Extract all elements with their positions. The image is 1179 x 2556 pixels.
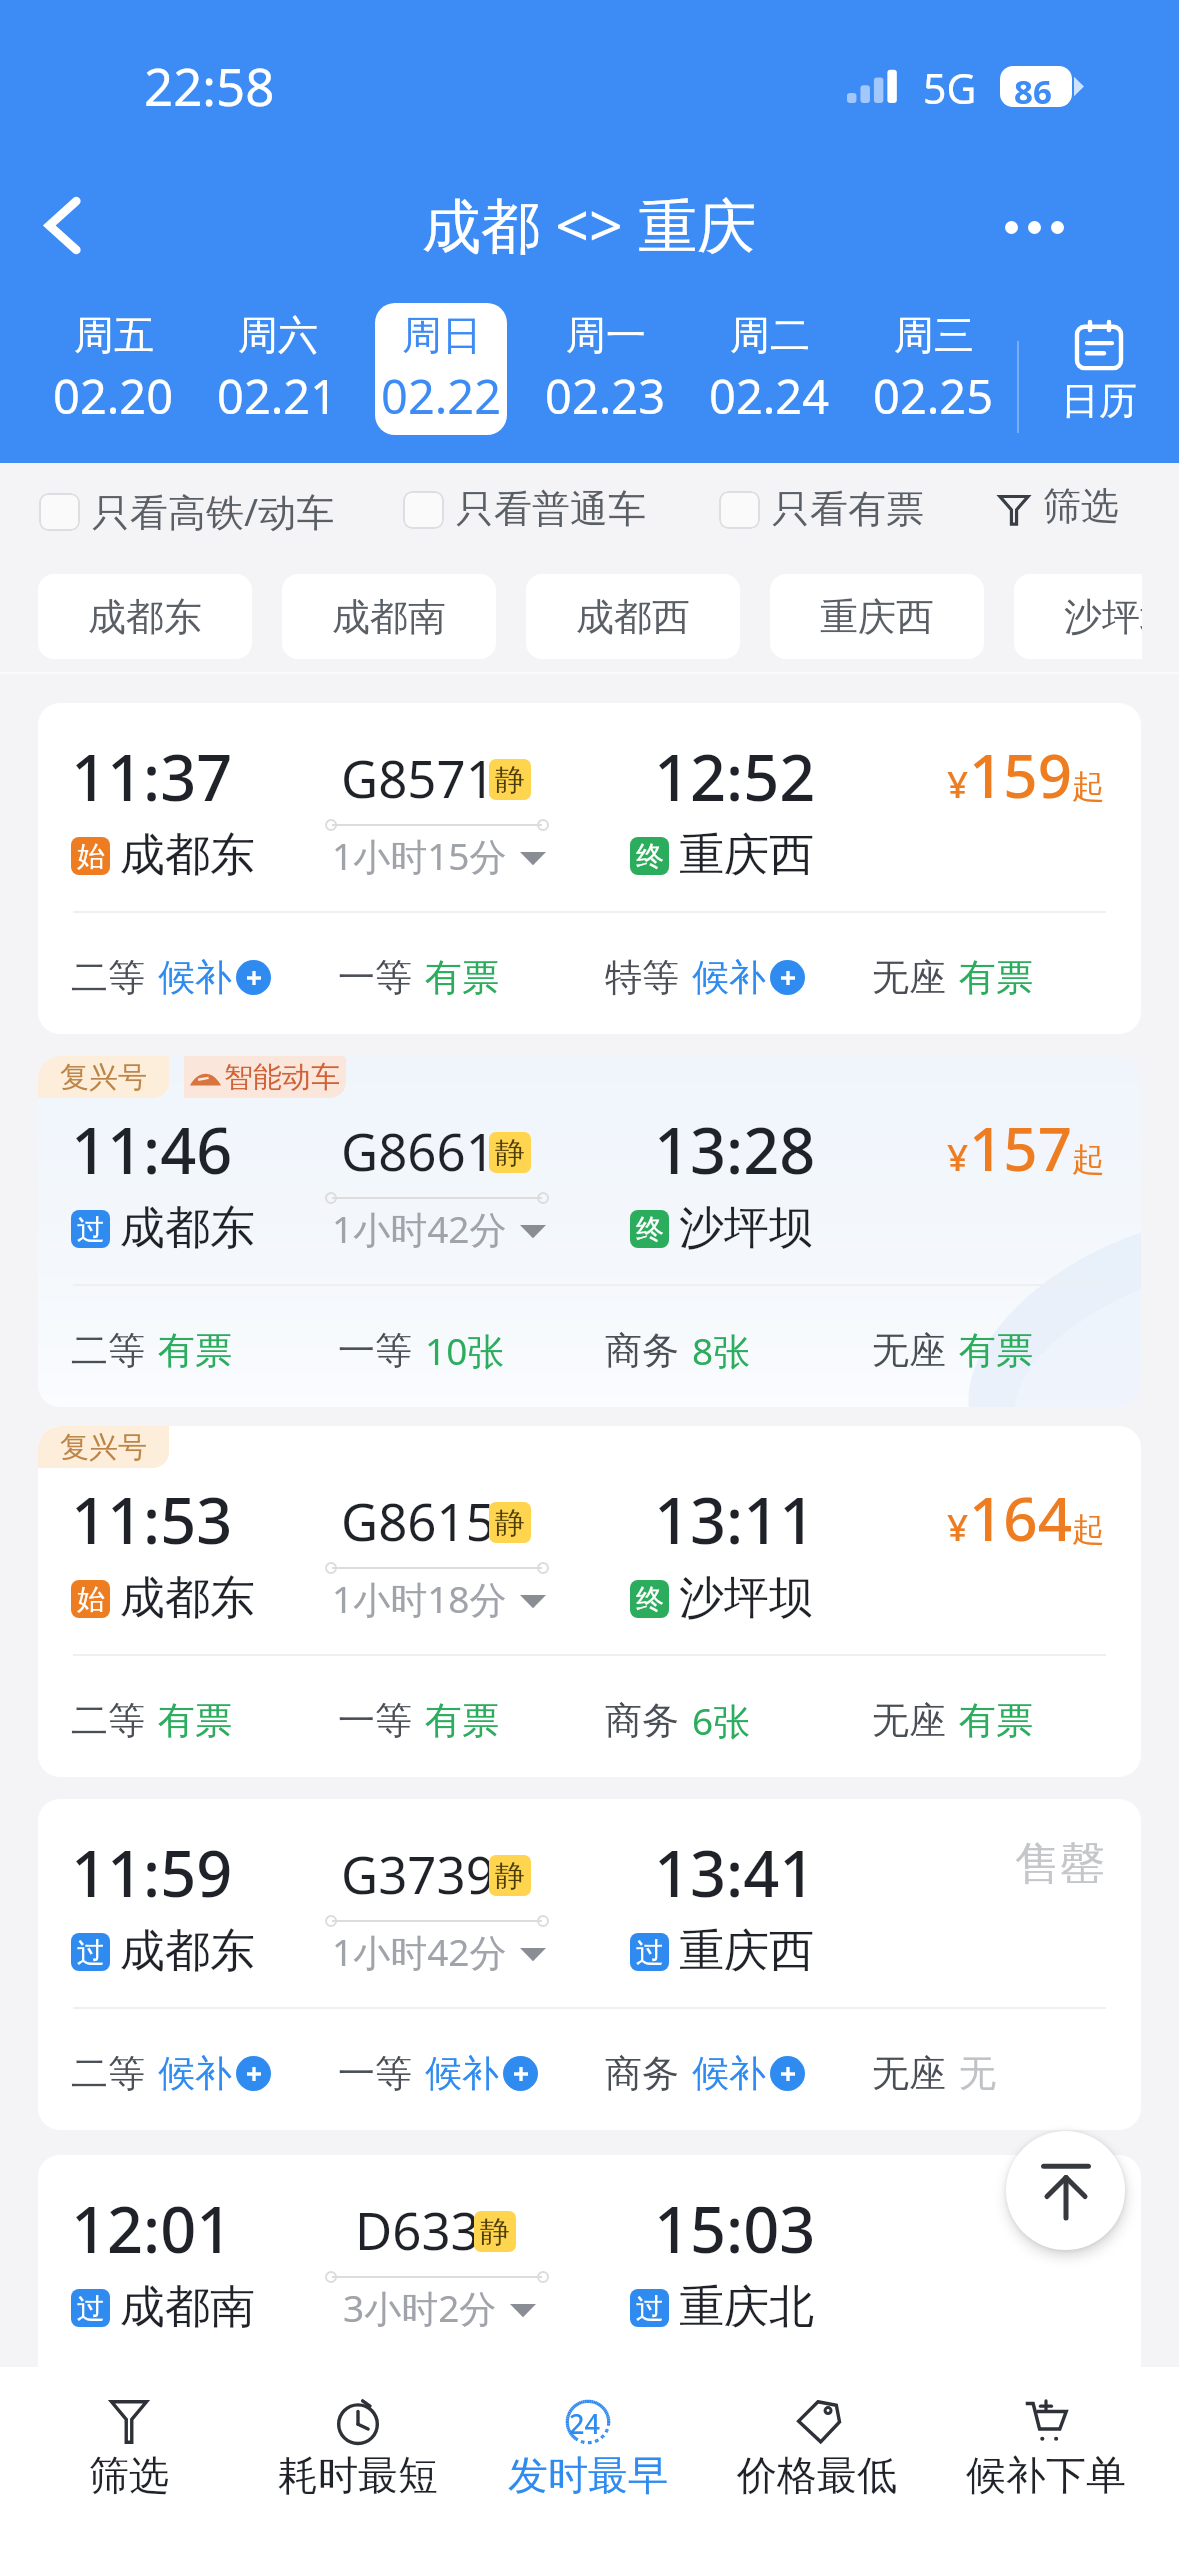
staticText: 成都 <> 重庆	[422, 184, 757, 265]
button[interactable]: 周二	[703, 303, 835, 435]
staticText: 只看普通车	[456, 485, 646, 533]
staticText: 有票	[158, 1327, 232, 1374]
button[interactable]: 筛选	[19, 2367, 239, 2556]
staticText: D633	[355, 2195, 480, 2264]
button[interactable]: 只看普通车	[403, 486, 646, 534]
button[interactable]: Back	[14, 177, 110, 273]
staticText: 周日	[402, 310, 482, 360]
staticText: 筛选	[1043, 482, 1119, 530]
staticText: 日历	[1061, 377, 1137, 425]
staticText: 周二	[730, 310, 810, 360]
staticText: 11:59	[71, 1830, 233, 1916]
staticText: ¥	[947, 1131, 969, 1181]
staticText: 成都东	[120, 1570, 255, 1627]
staticText: 智能动车	[224, 1059, 340, 1096]
staticText: 发时最早	[508, 2450, 668, 2500]
button[interactable]: 周六	[211, 303, 343, 435]
staticText: 02.22	[381, 364, 502, 428]
staticText: 售罄	[1015, 1836, 1105, 1893]
staticText: 1小时18分	[332, 1573, 507, 1624]
button[interactable]: 周五	[47, 303, 179, 435]
staticText: 8张	[692, 1325, 751, 1376]
staticText: 二等	[71, 954, 145, 1001]
staticText: 无	[959, 2050, 996, 2097]
button[interactable]: 12:01	[38, 2155, 1141, 2367]
staticText: 候补	[425, 2050, 499, 2097]
staticText: 有票	[425, 954, 499, 1001]
staticText: 6张	[692, 1695, 751, 1746]
button[interactable]: 周一	[539, 303, 671, 435]
button[interactable]: 11:59	[38, 1799, 1141, 2130]
staticText: 02.21	[217, 364, 338, 428]
staticText: 只看高铁/动车	[92, 485, 335, 537]
button[interactable]: 成都南	[282, 574, 496, 659]
staticText: 商务	[605, 1697, 679, 1744]
staticText: 重庆西	[679, 1923, 814, 1980]
staticText: 静	[495, 1857, 525, 1895]
staticText: 筛选	[89, 2450, 169, 2500]
staticText: 15:03	[654, 2186, 816, 2272]
staticText: 1小时42分	[332, 1203, 507, 1254]
staticText: 22:58	[144, 51, 275, 120]
staticText: 候补	[158, 2050, 232, 2097]
staticText: 候补	[692, 2050, 766, 2097]
staticText: 复兴号	[60, 1429, 147, 1466]
staticText: 始	[77, 1582, 105, 1617]
button[interactable]: 复兴号	[38, 1426, 1141, 1777]
staticText: 过	[77, 1935, 105, 1970]
button[interactable]: 成都西	[526, 574, 740, 659]
staticText: 无座	[872, 1327, 946, 1374]
staticText: 10张	[425, 1325, 505, 1376]
staticText: 候补	[692, 954, 766, 1001]
staticText: 无座	[872, 2050, 946, 2097]
staticText: 一等	[338, 2050, 412, 2097]
staticText: 成都东	[120, 1200, 255, 1257]
button[interactable]: 11:37	[38, 703, 1141, 1034]
staticText: 终	[636, 1582, 664, 1617]
staticText: 重庆北	[679, 2279, 814, 2336]
staticText: 164	[969, 1477, 1072, 1559]
staticText: 耗时最短	[278, 2450, 438, 2500]
staticText: 3小时2分	[343, 2282, 497, 2333]
staticText: 86	[1014, 69, 1052, 114]
button[interactable]: 周日	[375, 303, 507, 435]
button[interactable]: 价格最低	[707, 2367, 927, 2556]
button[interactable]: 沙坪坝	[1014, 574, 1142, 659]
staticText: 过	[636, 2291, 664, 2326]
staticText: 1小时15分	[332, 830, 507, 881]
button[interactable]: 周三	[867, 303, 999, 435]
staticText: 有票	[158, 1697, 232, 1744]
staticText: 5G	[923, 60, 977, 116]
staticText: 静	[495, 1504, 525, 1542]
button[interactable]: 成都东	[38, 574, 252, 659]
button[interactable]: 复兴号	[38, 1056, 1141, 1407]
button[interactable]: Calendar	[1019, 310, 1179, 463]
staticText: 只看有票	[772, 485, 924, 533]
staticText: 周六	[238, 310, 318, 360]
staticText: 13:41	[654, 1830, 816, 1916]
staticText: 02.23	[545, 364, 666, 428]
staticText: 13:28	[654, 1107, 816, 1193]
button[interactable]: 发时最早	[478, 2367, 698, 2556]
button[interactable]: 只看高铁/动车	[39, 486, 335, 538]
staticText: 157	[969, 1107, 1072, 1189]
staticText: 周一	[566, 310, 646, 360]
button[interactable]: More options	[986, 179, 1082, 275]
staticText: 起	[1072, 1139, 1105, 1181]
button[interactable]: 候补下单	[936, 2367, 1156, 2556]
staticText: 一等	[338, 954, 412, 1001]
button[interactable]: 耗时最短	[248, 2367, 468, 2556]
staticText: 商务	[605, 2050, 679, 2097]
staticText: 有票	[425, 1697, 499, 1744]
button[interactable]: 重庆西	[770, 574, 984, 659]
staticText: 一等	[338, 1327, 412, 1374]
button[interactable]: Back to top	[1006, 2131, 1125, 2250]
button[interactable]: 只看有票	[719, 486, 924, 534]
button[interactable]: 筛选	[998, 484, 1119, 532]
staticText: G8571	[341, 743, 495, 812]
staticText: 成都南	[120, 2279, 255, 2336]
staticText: 成都西	[576, 593, 690, 641]
staticText: 02.20	[53, 364, 174, 428]
staticText: 特等	[605, 954, 679, 1001]
staticText: G8661	[341, 1116, 495, 1185]
